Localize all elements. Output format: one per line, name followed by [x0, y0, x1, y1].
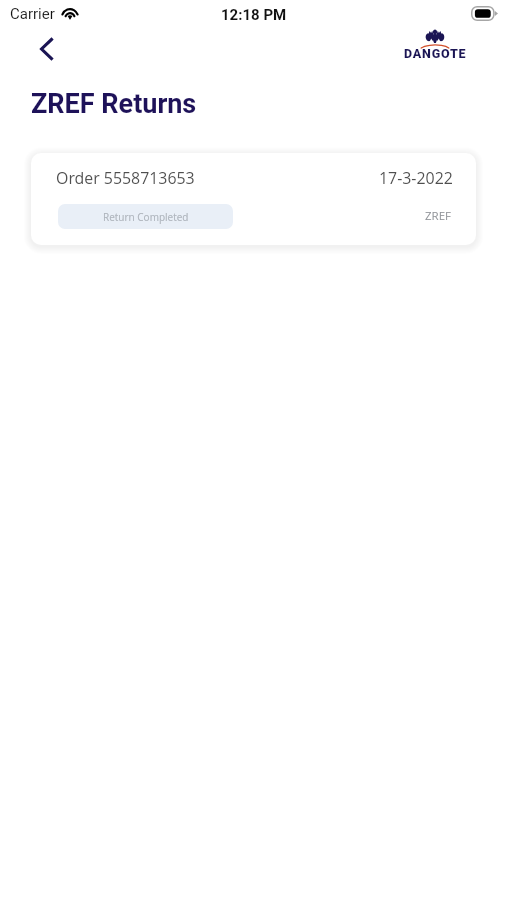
staticText: 12:18 PM: [221, 6, 287, 24]
button[interactable]: Return Completed: [58, 204, 233, 229]
staticText: Order 5558713653: [56, 167, 195, 189]
staticText: ZREF Returns: [31, 88, 197, 120]
staticText: ZREF: [425, 208, 452, 224]
staticText: DANGOTE: [404, 46, 467, 61]
staticText: Return Completed: [103, 210, 189, 224]
staticText: 17-3-2022: [379, 167, 453, 189]
staticText: Carrier: [10, 5, 55, 23]
button[interactable]: Back: [25, 27, 68, 70]
button[interactable]: Order 5558713653: [31, 153, 476, 245]
button[interactable]: Dangote logo: [402, 25, 468, 61]
